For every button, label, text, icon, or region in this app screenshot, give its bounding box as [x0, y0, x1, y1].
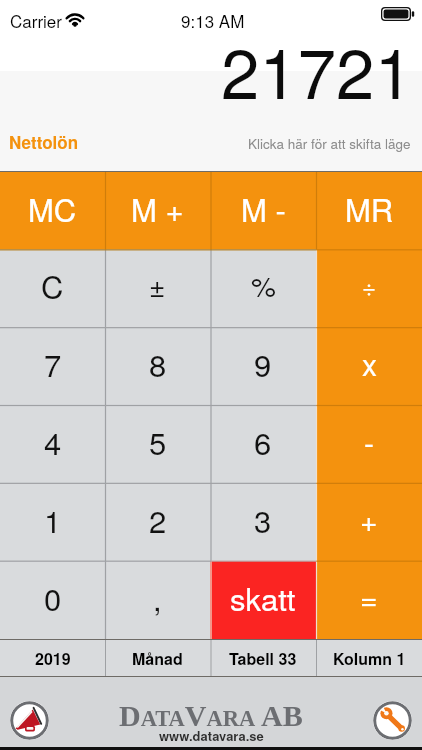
staticText: 5: [149, 419, 167, 463]
staticText: %: [251, 265, 276, 305]
staticText: =: [360, 576, 378, 619]
staticText: M -: [241, 186, 286, 230]
button[interactable]: 8: [105, 327, 210, 405]
button[interactable]: 2019: [0, 640, 105, 676]
button[interactable]: ±: [105, 249, 210, 327]
button[interactable]: x: [316, 327, 422, 405]
staticText: ±: [149, 265, 166, 305]
staticText: 8: [149, 341, 167, 385]
button[interactable]: -: [316, 405, 422, 483]
staticText: -: [364, 420, 374, 463]
staticText: C: [41, 263, 64, 307]
staticText: 0: [44, 575, 62, 619]
button[interactable]: Tabell 33: [210, 640, 316, 676]
staticText: 1: [44, 497, 62, 541]
button[interactable]: 4: [0, 405, 105, 483]
staticText: 21721: [221, 20, 413, 119]
staticText: MR: [345, 186, 394, 230]
staticText: skatt: [230, 575, 296, 619]
button[interactable]: 2: [105, 483, 210, 561]
button[interactable]: %: [210, 249, 316, 327]
staticText: Klicka här för att skifta läge: [248, 134, 411, 153]
staticText: Månad: [132, 647, 183, 670]
staticText: ,: [153, 575, 162, 619]
button[interactable]: =: [316, 561, 422, 639]
button[interactable]: M -: [210, 172, 316, 249]
staticText: 4: [44, 419, 62, 463]
staticText: 6: [254, 419, 272, 463]
staticText: 2019: [35, 647, 71, 670]
button[interactable]: Kolumn 1: [316, 640, 422, 676]
button[interactable]: C: [0, 249, 105, 327]
staticText: 2: [149, 497, 167, 541]
button[interactable]: MR: [316, 172, 422, 249]
staticText: M +: [131, 186, 184, 230]
staticText: 9:13 AM: [181, 8, 245, 32]
staticText: x: [362, 342, 377, 385]
staticText: www.datavara.se: [159, 726, 264, 745]
staticText: +: [360, 498, 378, 541]
staticText: Carrier: [10, 8, 62, 32]
staticText: 3: [254, 497, 272, 541]
button[interactable]: 9: [210, 327, 316, 405]
button[interactable]: skatt: [210, 561, 316, 639]
staticText: MC: [28, 186, 77, 230]
button[interactable]: 7: [0, 327, 105, 405]
button[interactable]: News: [10, 701, 49, 740]
button[interactable]: 0: [0, 561, 105, 639]
button[interactable]: 3: [210, 483, 316, 561]
button[interactable]: +: [316, 483, 422, 561]
button[interactable]: ,: [105, 561, 210, 639]
button[interactable]: 5: [105, 405, 210, 483]
button[interactable]: 6: [210, 405, 316, 483]
button[interactable]: M +: [105, 172, 210, 249]
button[interactable]: Månad: [105, 640, 210, 676]
button[interactable]: MC: [0, 172, 105, 249]
staticText: 9: [254, 341, 272, 385]
button[interactable]: Nettolön: [9, 130, 79, 154]
staticText: 7: [44, 341, 62, 385]
staticText: Kolumn 1: [333, 647, 406, 670]
button[interactable]: 1: [0, 483, 105, 561]
staticText: DATAVARA AB: [119, 699, 303, 732]
button[interactable]: Settings: [373, 701, 412, 740]
button[interactable]: ÷: [316, 249, 422, 327]
staticText: Tabell 33: [229, 647, 297, 670]
staticText: ÷: [362, 268, 377, 302]
